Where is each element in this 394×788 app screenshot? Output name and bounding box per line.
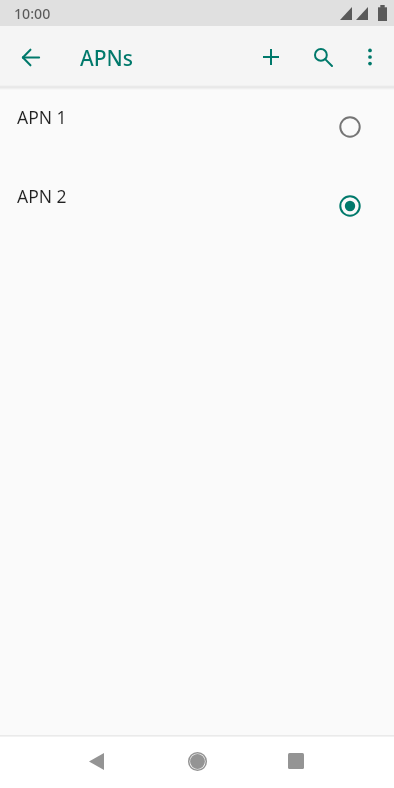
button[interactable]: Add APN bbox=[247, 33, 295, 81]
staticText: APN 2 bbox=[17, 184, 67, 208]
button[interactable]: Navigate up bbox=[7, 33, 55, 81]
staticText: APNs bbox=[80, 44, 134, 73]
button[interactable]: Recent apps bbox=[272, 737, 320, 785]
button[interactable]: APN 1 bbox=[0, 87, 394, 166]
button[interactable]: More options bbox=[346, 33, 394, 81]
button[interactable]: APN 2 bbox=[0, 166, 394, 245]
button[interactable]: Home bbox=[173, 737, 221, 785]
button[interactable]: Search bbox=[299, 33, 347, 81]
staticText: APN 1 bbox=[17, 105, 67, 129]
staticText: 10:00 bbox=[14, 4, 51, 23]
button[interactable]: Back bbox=[72, 737, 120, 785]
